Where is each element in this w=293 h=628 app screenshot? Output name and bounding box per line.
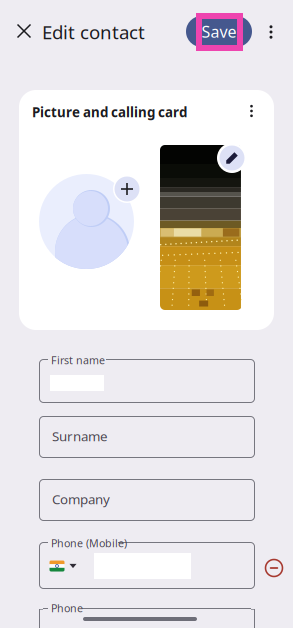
button[interactable]: Add photo — [113, 175, 141, 203]
button[interactable]: Save — [186, 16, 252, 47]
staticText: Edit contact — [42, 20, 145, 44]
staticText: Phone — [51, 601, 83, 615]
button[interactable]: More options — [264, 24, 278, 40]
button[interactable]: Remove phone number — [264, 558, 284, 578]
button[interactable]: Edit calling card — [217, 143, 247, 173]
button[interactable]: Add picture — [39, 174, 134, 269]
staticText: Surname — [52, 427, 108, 445]
staticText: First name — [51, 353, 105, 367]
button[interactable]: Card options — [245, 103, 258, 119]
staticText: Picture and calling card — [32, 103, 187, 121]
button[interactable]: Select country code — [47, 558, 79, 574]
staticText: Save — [201, 21, 236, 42]
button[interactable]: Close — [10, 17, 38, 45]
staticText: Phone (Mobile) — [51, 536, 127, 550]
staticText: Company — [52, 490, 110, 508]
